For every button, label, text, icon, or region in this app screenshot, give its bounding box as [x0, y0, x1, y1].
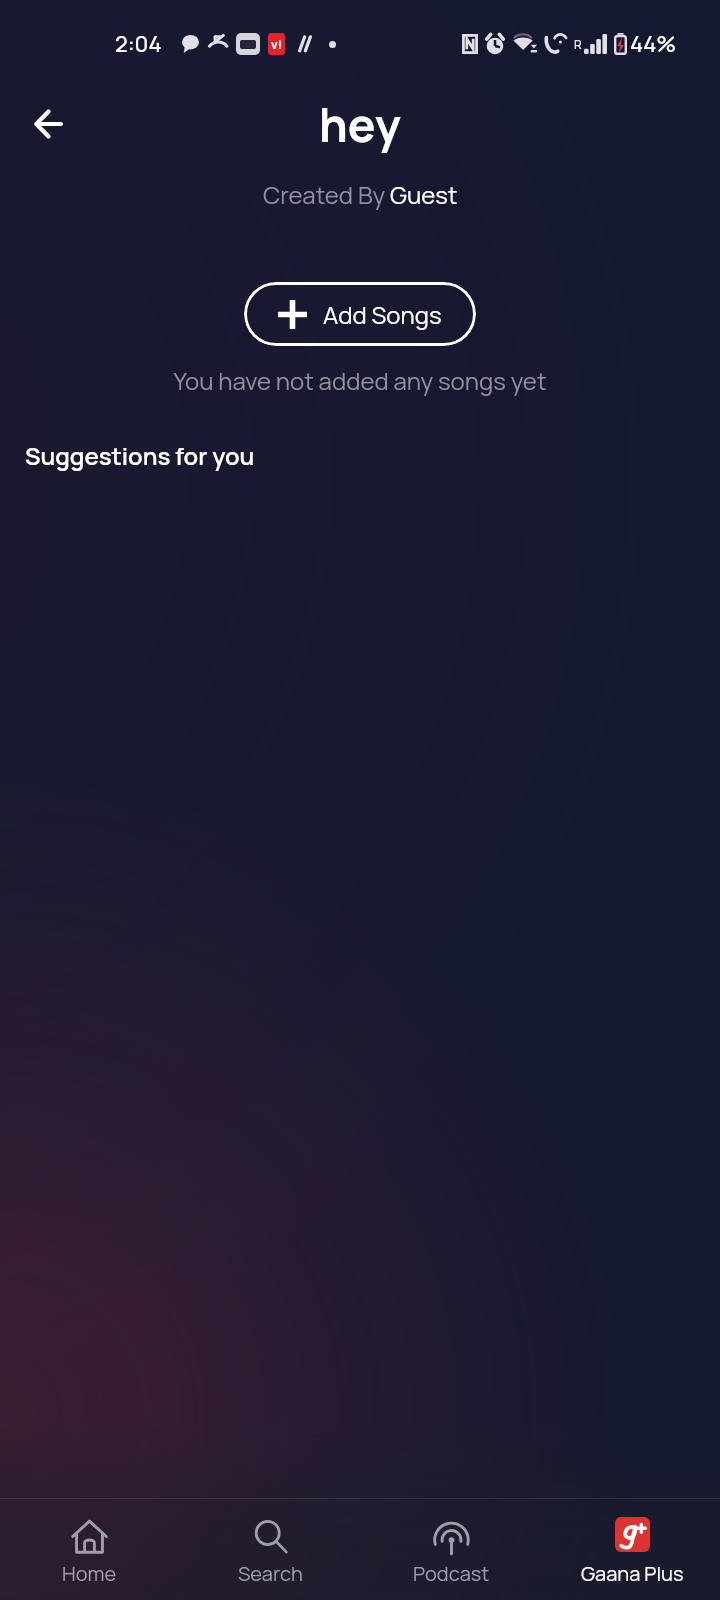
button[interactable]: Gaana Plus [546, 1519, 718, 1587]
staticText: 44% [630, 29, 677, 59]
button[interactable]: Home [3, 1519, 175, 1587]
button[interactable]: Back [14, 90, 82, 158]
staticText: Suggestions for you [25, 439, 255, 472]
staticText: hey [319, 93, 401, 156]
staticText: v! [271, 36, 282, 52]
staticText: Podcast [413, 1560, 490, 1587]
button[interactable]: Add Songs [244, 282, 476, 346]
staticText: 2:04 [115, 29, 162, 59]
staticText: Home [62, 1560, 117, 1587]
staticText: You have not added any songs yet [0, 364, 720, 397]
staticText: Add Songs [323, 298, 442, 331]
staticText: Search [238, 1560, 303, 1587]
staticText: Gaana Plus [581, 1560, 684, 1587]
button[interactable]: Podcast [365, 1519, 537, 1587]
button[interactable]: Search [184, 1519, 356, 1587]
staticText: Created By Guest [263, 178, 458, 211]
staticText: R [574, 36, 582, 52]
